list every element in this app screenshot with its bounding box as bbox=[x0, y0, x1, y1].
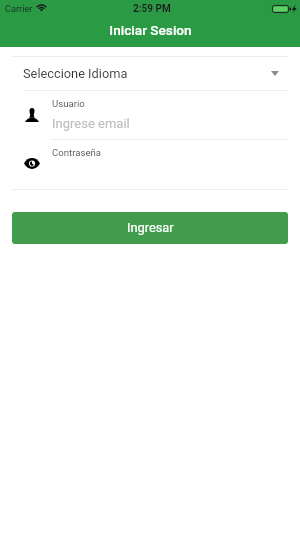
button[interactable]: Mostrar contraseña bbox=[0, 140, 300, 189]
staticText: Seleccione Idioma bbox=[23, 66, 128, 81]
staticText: 2:59 PM bbox=[133, 3, 171, 15]
staticText: Carrier bbox=[5, 3, 33, 14]
staticText: Usuario bbox=[52, 98, 85, 109]
staticText: Contraseña bbox=[52, 147, 101, 158]
other: Seleccione Idioma bbox=[271, 71, 279, 76]
staticText: Ingrese email bbox=[52, 116, 130, 131]
staticText: Iniciar Sesion bbox=[109, 22, 192, 38]
button[interactable]: Ingresar bbox=[12, 212, 288, 244]
button[interactable]: Seleccione Idioma bbox=[0, 57, 300, 90]
button[interactable]: Usuario bbox=[0, 91, 300, 139]
other: Mostrar contraseña bbox=[24, 159, 40, 168]
staticText: Ingresar bbox=[127, 220, 174, 235]
